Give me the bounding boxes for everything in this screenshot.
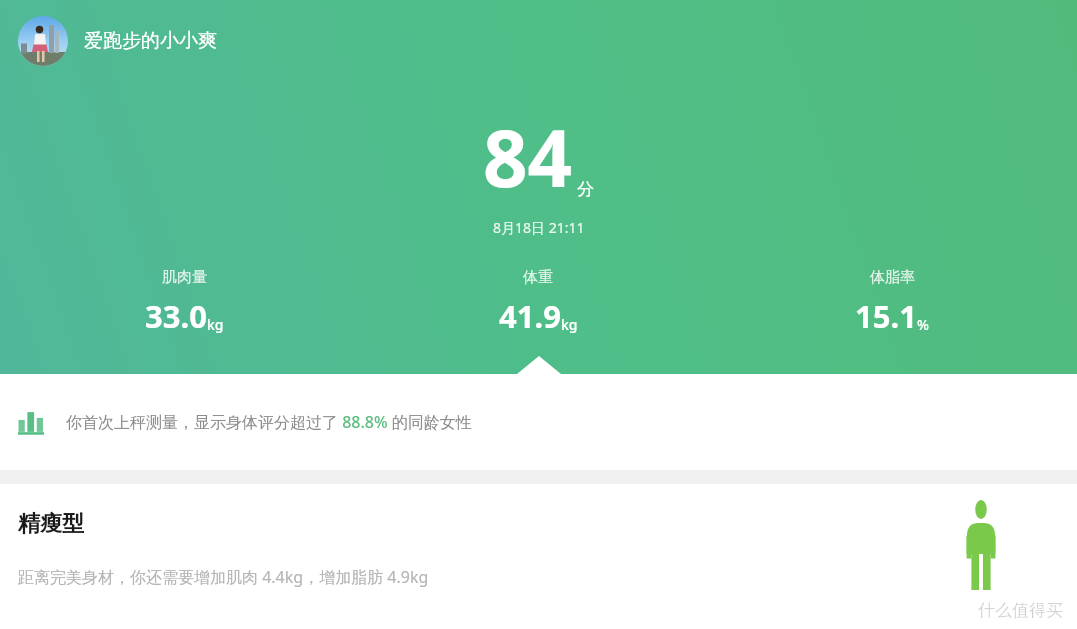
staticText: 分 <box>577 179 594 200</box>
button[interactable]: 肌肉量 <box>8 268 361 337</box>
staticText: 什么值得买 <box>978 600 1063 621</box>
button[interactable]: 体重 <box>361 268 715 337</box>
staticText: 距离完美身材，你还需要增加肌肉 4.4kg，增加脂肪 4.9kg <box>18 566 429 588</box>
staticText: 你首次上秤测量，显示身体评分超过了 88.8% 的同龄女性 <box>66 411 472 433</box>
staticText: kg <box>207 315 224 334</box>
button[interactable]: 精瘦型 <box>0 484 1077 629</box>
staticText: 爱跑步的小小爽 <box>84 29 217 53</box>
staticText: % <box>917 315 929 334</box>
button[interactable]: Profile photo <box>18 16 68 66</box>
staticText: 33.0 <box>145 295 207 337</box>
staticText: 体重 <box>523 268 553 287</box>
button[interactable]: 体脂率 <box>715 268 1069 337</box>
staticText: 41.9 <box>499 295 561 337</box>
other: Statistics <box>18 409 44 435</box>
staticText: 精瘦型 <box>18 510 84 538</box>
button[interactable]: Profile photo <box>16 14 219 68</box>
other: Body type figure <box>957 500 1005 590</box>
staticText: 体脂率 <box>870 268 915 287</box>
staticText: 肌肉量 <box>162 268 207 287</box>
staticText: kg <box>561 315 578 334</box>
button[interactable]: Statistics <box>0 374 1077 470</box>
staticText: 15.1 <box>855 295 917 337</box>
staticText: 84 <box>483 104 573 210</box>
staticText: 8月18日 21:11 <box>493 218 585 237</box>
